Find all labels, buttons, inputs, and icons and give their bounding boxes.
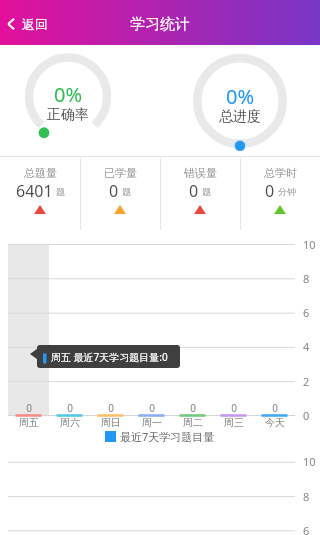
button[interactable]: 总题量 [0,156,80,230]
staticText: 0 [14,401,44,415]
staticText: 0% [28,81,108,108]
staticText: 周三 [214,416,254,429]
staticText: 10 [303,237,319,252]
staticText: 0 [109,180,119,202]
staticText: 总题量 [24,166,57,180]
staticText: 题 [202,186,211,197]
staticText: 10 [303,454,319,469]
button[interactable]: 返回 [2,13,51,35]
button[interactable]: 已学量 [80,156,160,230]
staticText: 正确率 [28,106,108,124]
staticText: 2 [303,374,319,389]
staticText: 总进度 [200,108,280,126]
staticText: 8 [303,489,319,504]
staticText: 6 [303,523,319,535]
staticText: 总学时 [264,166,297,180]
staticText: 0 [265,180,275,202]
staticText: 4 [303,339,319,354]
staticText: 周二 [173,416,213,429]
staticText: 今天 [255,416,295,429]
staticText: 已学量 [104,166,137,180]
staticText: 题 [56,186,65,197]
staticText: 最近7天学习题目量 [120,429,215,444]
staticText: 0 [55,401,85,415]
staticText: 0 [189,180,199,202]
staticText: 周五 最近7天学习题目量:0 [51,350,177,364]
staticText: 0 [219,401,249,415]
button[interactable]: 最近7天学习题目量 [0,429,320,444]
staticText: 0 [137,401,167,415]
staticText: 周一 [132,416,172,429]
staticText: 错误量 [184,166,217,180]
staticText: 0 [303,408,319,423]
staticText: 周六 [50,416,90,429]
staticText: 6401 [16,180,53,202]
staticText: 0 [96,401,126,415]
staticText: 8 [303,271,319,286]
staticText: 周五 [9,416,49,429]
staticText: 6 [303,305,319,320]
staticText: 周日 [91,416,131,429]
staticText: 0 [178,401,208,415]
button[interactable]: 错误量 [160,156,240,230]
staticText: 题 [122,186,131,197]
staticText: 学习统计 [130,15,190,34]
staticText: 0 [260,401,290,415]
staticText: 返回 [22,16,48,32]
button[interactable]: 总学时 [240,156,320,230]
staticText: 0% [200,83,280,110]
staticText: 分钟 [278,186,296,197]
